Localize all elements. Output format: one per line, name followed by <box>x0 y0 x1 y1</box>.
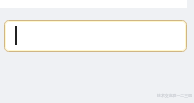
button[interactable]: Text input field <box>4 20 187 52</box>
staticText: 技术交流群一二三四 <box>157 93 193 98</box>
